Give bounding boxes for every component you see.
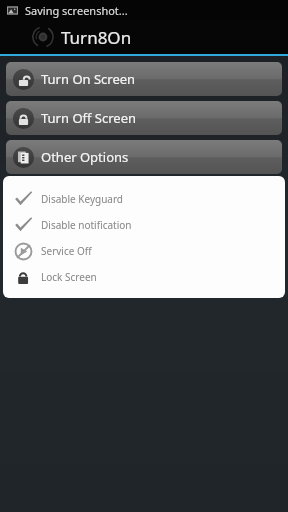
button[interactable]: Disable notification [3,212,285,238]
staticText: Service Off [41,244,92,258]
staticText: Lock Screen [41,270,97,284]
button[interactable]: Turn On Screen [6,62,282,96]
staticText: Disable Keyguard [41,192,123,206]
staticText: Turn Off Screen [41,109,137,127]
button[interactable]: Other Options [6,140,282,174]
staticText: Disable notification [41,218,132,232]
staticText: Other Options [41,148,129,166]
staticText: Turn On Screen [41,70,136,88]
button[interactable]: Lock Screen [3,264,285,290]
button[interactable]: Service Off [3,238,285,264]
button[interactable]: Turn Off Screen [6,101,282,135]
staticText: Turn8On [61,26,132,49]
staticText: Saving screenshot... [25,3,128,18]
button[interactable]: Disable Keyguard [3,186,285,212]
